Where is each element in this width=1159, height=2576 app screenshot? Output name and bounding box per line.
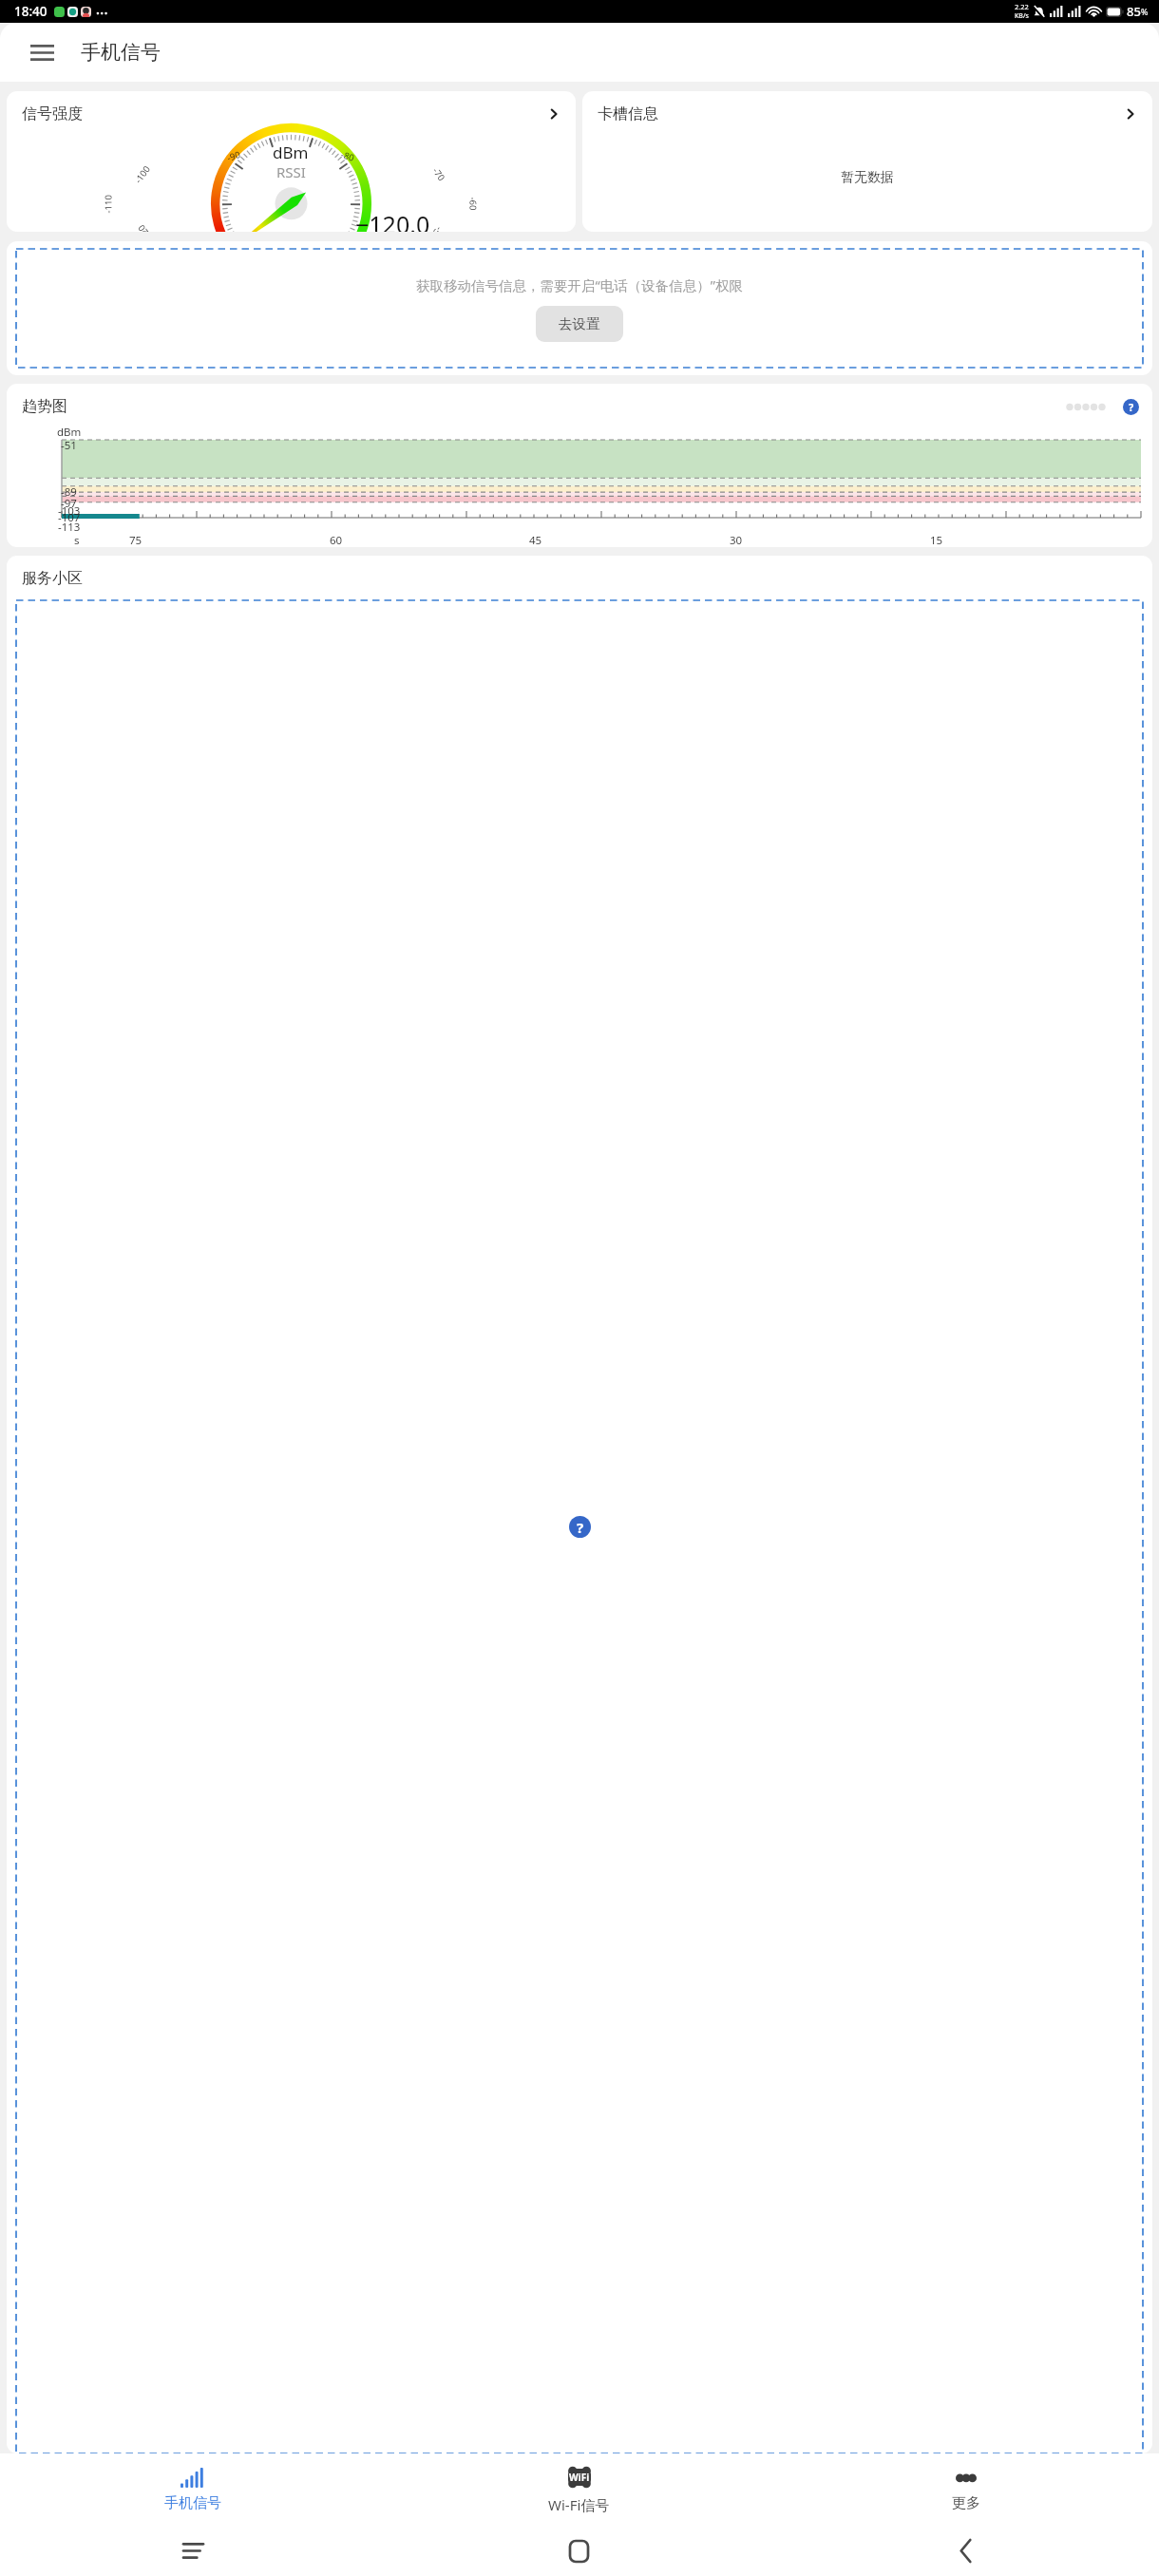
staticText: -80 xyxy=(339,148,356,164)
staticText: 手机信号 xyxy=(81,40,161,65)
staticText: 75 xyxy=(129,533,142,547)
staticText: -50 xyxy=(427,224,445,232)
button[interactable]: 信号强度 xyxy=(7,91,576,232)
staticText: -97 xyxy=(61,496,77,511)
staticText: ? xyxy=(1129,400,1134,414)
button[interactable]: Back xyxy=(772,2526,1159,2576)
staticText: -70 xyxy=(430,165,448,183)
staticText: 暂无数据 xyxy=(841,169,894,186)
button[interactable]: 卡槽信息 xyxy=(582,91,1152,232)
staticText: ? xyxy=(577,1518,584,1537)
staticText: 60 xyxy=(330,533,343,547)
button[interactable]: 更多 xyxy=(772,2453,1159,2526)
button[interactable]: Home xyxy=(386,2526,772,2576)
staticText: dBm xyxy=(57,425,82,440)
staticText: KB/s xyxy=(1015,11,1029,21)
button[interactable]: WiFi xyxy=(386,2453,772,2526)
staticText: -103 xyxy=(58,503,81,519)
button[interactable]: Menu xyxy=(21,31,63,73)
staticText: 15 xyxy=(930,533,943,547)
staticText: -90 xyxy=(225,148,242,164)
staticText: % xyxy=(1141,6,1149,17)
staticText: 手机信号 xyxy=(164,2494,221,2512)
button[interactable]: Help xyxy=(1123,399,1139,415)
staticText: 更多 xyxy=(952,2494,980,2512)
staticText: -89 xyxy=(61,484,77,500)
staticText: 45 xyxy=(529,533,542,547)
staticText: RSSI xyxy=(276,162,306,181)
staticText: 2.22 xyxy=(1015,2,1029,11)
staticText: -60 xyxy=(467,197,479,210)
staticText: 卡槽信息 xyxy=(598,104,658,123)
staticText: 去设置 xyxy=(559,315,600,332)
staticText: 30 xyxy=(730,533,743,547)
staticText: s xyxy=(74,533,80,547)
staticText: -110 xyxy=(102,194,115,213)
staticText: 趋势图 xyxy=(22,397,67,416)
staticText: Wi-Fi信号 xyxy=(548,2495,610,2514)
staticText: -120 xyxy=(135,222,156,232)
button[interactable]: 去设置 xyxy=(536,306,623,342)
staticText: −120.0 xyxy=(355,208,430,232)
staticText: -113 xyxy=(58,520,81,535)
staticText: -100 xyxy=(132,163,153,186)
staticText: 获取移动信号信息，需要开启“电话（设备信息）”权限 xyxy=(416,275,743,294)
staticText: dBm xyxy=(273,142,309,163)
staticText: WiFi xyxy=(569,2471,590,2484)
button[interactable]: Recents xyxy=(0,2526,386,2576)
staticText: -51 xyxy=(61,438,77,453)
staticText: 服务小区 xyxy=(22,569,83,588)
staticText: 信号强度 xyxy=(22,104,83,123)
staticText: 85 xyxy=(1127,3,1141,20)
staticText: -107 xyxy=(58,510,81,525)
button[interactable]: 手机信号 xyxy=(0,2453,386,2526)
staticText: 18:40 xyxy=(14,3,47,20)
button[interactable]: Help xyxy=(569,1516,591,1538)
